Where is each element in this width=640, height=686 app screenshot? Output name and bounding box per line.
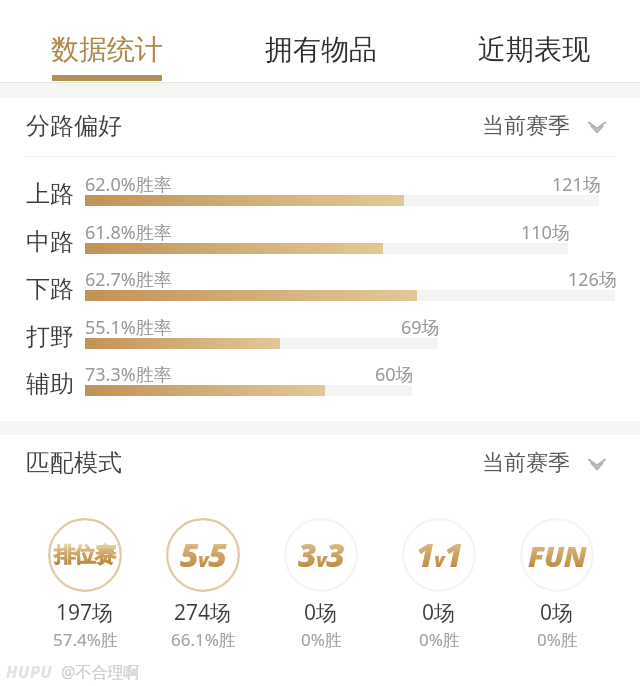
staticText: 打野 (26, 322, 74, 352)
staticText: 5v5 (180, 533, 227, 577)
staticText: 近期表现 (478, 32, 590, 66)
staticText: 0%胜 (301, 628, 342, 651)
staticText: 110场 (521, 220, 570, 245)
staticText: 0场 (304, 598, 338, 626)
staticText: 0%胜 (419, 628, 460, 651)
button[interactable]: 5v5 (144, 500, 262, 660)
button[interactable]: 3v3 (262, 500, 380, 660)
staticText: 121场 (552, 172, 601, 197)
staticText: 中路 (26, 227, 74, 257)
staticText: 274场 (174, 598, 232, 626)
button[interactable]: 排位赛 (26, 500, 144, 660)
staticText: 61.8%胜率 (85, 220, 172, 245)
staticText: 126场 (568, 267, 617, 292)
staticText: 3v3 (298, 533, 345, 577)
staticText: FUN (528, 536, 586, 575)
button[interactable]: 当前赛季 (482, 106, 606, 146)
button[interactable]: 拥有物品 (214, 0, 427, 80)
staticText: 0场 (540, 598, 574, 626)
staticText: @不合理啊 (61, 661, 140, 683)
staticText: 55.1%胜率 (85, 315, 172, 340)
staticText: 分路偏好 (26, 111, 122, 141)
staticText: 62.0%胜率 (85, 172, 172, 197)
staticText: 69场 (401, 315, 440, 340)
staticText: 下路 (26, 274, 74, 304)
staticText: 73.3%胜率 (85, 362, 172, 387)
button[interactable]: 近期表现 (427, 0, 640, 80)
button[interactable]: 当前赛季 (482, 443, 606, 483)
staticText: 57.4%胜 (53, 628, 118, 651)
staticText: HUPU (6, 661, 53, 683)
staticText: 0场 (422, 598, 456, 626)
staticText: 0%胜 (537, 628, 578, 651)
button[interactable]: FUN (498, 500, 616, 660)
staticText: 拥有物品 (265, 32, 377, 66)
button[interactable]: 数据统计 (0, 0, 214, 80)
staticText: 当前赛季 (482, 112, 570, 140)
staticText: 排位赛 (54, 542, 116, 568)
staticText: 197场 (56, 598, 114, 626)
staticText: 匹配模式 (26, 448, 122, 478)
staticText: 数据统计 (51, 32, 163, 66)
staticText: 1v1 (416, 533, 463, 577)
staticText: 当前赛季 (482, 449, 570, 477)
staticText: 66.1%胜 (171, 628, 236, 651)
staticText: 60场 (375, 362, 414, 387)
button[interactable]: 1v1 (380, 500, 498, 660)
staticText: 62.7%胜率 (85, 267, 172, 292)
staticText: 上路 (26, 179, 74, 209)
staticText: 辅助 (26, 369, 74, 399)
